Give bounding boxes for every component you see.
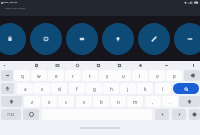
staticText: . [169,99,171,105]
button[interactable]: z [24,96,40,107]
staticText: o [156,73,159,79]
button[interactable]: Clipboard [33,62,40,69]
button[interactable]: Keep [138,23,170,55]
staticText: h [110,86,113,92]
button[interactable]: Expand [1,62,8,69]
staticText: s [41,86,44,92]
button[interactable]: y [99,70,115,81]
button[interactable]: Microphone [190,62,197,69]
button[interactable]: Gmail [174,23,200,55]
staticText: l [162,86,164,92]
staticText: g [93,86,96,92]
button[interactable]: Chrome [0,23,26,55]
staticText: a [24,86,27,92]
staticText: Search your apps [5,6,26,9]
button[interactable]: Symbols [1,109,21,120]
button[interactable]: r [65,70,81,81]
staticText: b [100,99,103,105]
button[interactable]: . [162,96,178,107]
staticText: c [65,99,68,105]
button[interactable]: u [115,70,131,81]
staticText: m [133,99,138,105]
button[interactable]: a [17,83,33,94]
button[interactable]: c [58,96,74,107]
button[interactable]: Search [173,83,199,94]
button[interactable]: More [189,109,200,120]
button[interactable]: l [155,83,171,94]
staticText: p [173,73,176,79]
button[interactable]: s [34,83,50,94]
staticText: f [76,86,78,92]
button[interactable]: Emoji [137,62,144,69]
button[interactable]: f [69,83,85,94]
staticText: d [58,86,61,92]
staticText: j [127,86,129,92]
staticText: x [48,99,51,105]
staticText: v [83,99,86,105]
button[interactable]: Shift right [179,96,200,107]
button[interactable]: GIF [54,62,61,69]
button[interactable]: e [48,70,64,81]
button[interactable]: Drive [102,23,134,55]
button[interactable]: g [86,83,102,94]
button[interactable]: n [110,96,126,107]
staticText: ?123 [7,112,15,117]
staticText: t [89,73,91,79]
button[interactable]: Emoji [23,109,39,120]
button[interactable]: m [127,96,143,107]
button[interactable]: i [132,70,148,81]
staticText: k [144,86,147,92]
button[interactable]: Sticker [74,62,81,69]
staticText: e [55,73,58,79]
staticText: , [152,99,154,105]
staticText: r [72,73,74,79]
button[interactable]: Backspace [184,70,200,81]
button[interactable]: k [137,83,153,94]
button[interactable]: Shift [1,96,22,107]
staticText: u [122,73,125,79]
button[interactable]: q [14,70,30,81]
button[interactable]: o [149,70,165,81]
button[interactable]: Calendar [66,23,98,55]
staticText: Mon, Oct 30 [3,0,18,3]
button[interactable]: v [76,96,92,107]
button[interactable]: , [145,96,161,107]
staticText: n [117,99,120,105]
button[interactable]: t [82,70,98,81]
button[interactable]: Theme [116,62,123,69]
staticText: y [106,73,109,79]
button[interactable]: Caps lock [1,83,14,94]
button[interactable]: Left [155,109,169,120]
button[interactable]: j [120,83,136,94]
button[interactable]: b [93,96,109,107]
button[interactable]: Translate [95,62,102,69]
button[interactable]: w [31,70,47,81]
staticText: i [139,73,141,79]
button[interactable]: p [166,70,182,81]
staticText: q [21,73,24,79]
button[interactable]: h [103,83,119,94]
button[interactable]: Settings [163,62,170,69]
button[interactable]: d [51,83,67,94]
staticText: w [37,73,41,79]
button[interactable]: Right [172,109,186,120]
button[interactable]: Tab [1,70,13,81]
button[interactable]: Photos [30,23,62,55]
button[interactable]: x [41,96,57,107]
staticText: z [31,99,34,105]
